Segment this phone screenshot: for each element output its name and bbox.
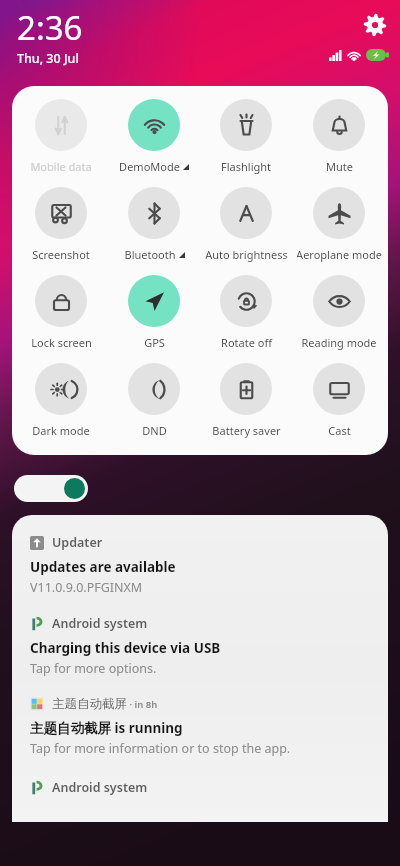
staticText: V11.0.9.0.PFGINXM xyxy=(30,579,143,596)
staticText: DemoMode xyxy=(119,159,180,174)
staticText: 2:36 xyxy=(17,5,83,50)
button[interactable]: Aeroplane mode xyxy=(295,187,383,262)
staticText: Mute xyxy=(326,159,353,174)
staticText: Aeroplane mode xyxy=(296,247,382,262)
staticText: 主题自动截屏 xyxy=(52,696,127,712)
button[interactable]: Lock screen xyxy=(17,275,105,350)
staticText: Screenshot xyxy=(32,247,90,262)
staticText: Updates are available xyxy=(30,558,176,576)
button[interactable]: Android system xyxy=(12,757,388,822)
button[interactable]: 主题自动截屏 xyxy=(12,677,388,757)
button[interactable]: DemoMode xyxy=(110,99,198,174)
staticText: Updater xyxy=(52,534,103,551)
button[interactable]: Settings xyxy=(363,13,387,37)
staticText: Dark mode xyxy=(32,423,90,438)
button[interactable]: Rotate off xyxy=(202,275,290,350)
staticText: DND xyxy=(142,423,167,438)
button[interactable]: GPS xyxy=(110,275,198,350)
staticText: · in 8h xyxy=(127,698,158,711)
button[interactable]: Mute xyxy=(295,99,383,174)
staticText: Battery saver xyxy=(212,423,281,438)
staticText: Tap for more options. xyxy=(30,660,157,677)
button[interactable]: Auto brightness xyxy=(202,187,290,262)
staticText: Rotate off xyxy=(221,335,272,350)
staticText: Mobile data xyxy=(30,159,92,174)
staticText: GPS xyxy=(144,335,165,350)
button[interactable]: Dark mode xyxy=(17,363,105,438)
button[interactable]: Screenshot xyxy=(17,187,105,262)
staticText: 主题自动截屏 is running xyxy=(30,719,183,737)
staticText: Reading mode xyxy=(301,335,377,350)
staticText: Cast xyxy=(328,423,351,438)
button[interactable]: Brightness toggle xyxy=(14,475,88,502)
staticText: Android system xyxy=(52,615,148,632)
button[interactable]: Flashlight xyxy=(202,99,290,174)
staticText: Auto brightness xyxy=(205,247,288,262)
button[interactable]: Bluetooth xyxy=(110,187,198,262)
button[interactable]: Updater xyxy=(12,515,388,596)
staticText: Thu, 30 Jul xyxy=(17,50,79,67)
button[interactable]: Android system xyxy=(12,596,388,677)
staticText: Android system xyxy=(52,779,148,796)
staticText: Flashlight xyxy=(221,159,271,174)
staticText: Tap for more information or to stop the … xyxy=(30,740,291,757)
button[interactable]: DND xyxy=(110,363,198,438)
staticText: Bluetooth xyxy=(124,247,176,262)
staticText: Charging this device via USB xyxy=(30,639,221,657)
button[interactable]: Cast xyxy=(295,363,383,438)
button[interactable]: Battery saver xyxy=(202,363,290,438)
button[interactable]: Mobile data xyxy=(17,99,105,174)
button[interactable]: Reading mode xyxy=(295,275,383,350)
staticText: Lock screen xyxy=(31,335,92,350)
